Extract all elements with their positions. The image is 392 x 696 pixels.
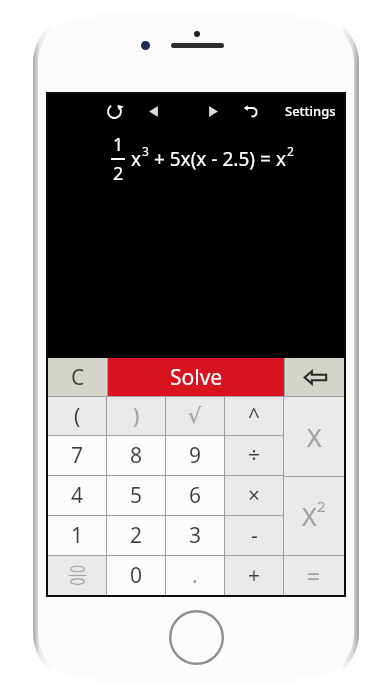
button[interactable]: 8 [107,436,165,475]
staticText: 0 [130,561,143,590]
staticText: + [248,561,261,590]
button[interactable]: Redo [100,97,128,125]
button[interactable]: √ [166,397,224,435]
staticText: 2 [317,496,326,516]
staticText: ÷ [248,441,261,470]
button[interactable]: 4 [48,476,106,515]
button[interactable]: Settings [277,96,344,126]
button[interactable]: Solve [108,358,284,396]
staticText: x [131,146,142,172]
staticText: 2 [130,521,143,550]
button[interactable]: ÷ [225,436,283,475]
button[interactable]: 3 [166,516,224,555]
staticText: 3 [142,143,149,159]
button[interactable]: = [284,556,344,595]
button[interactable]: ^ [225,397,283,435]
staticText: C [71,363,85,392]
staticText: 2 [287,143,294,159]
staticText: 5 [130,481,143,510]
staticText: = [307,560,321,591]
button[interactable]: Fraction [48,556,106,595]
staticText: 3 [189,521,202,550]
staticText: 9 [189,441,202,470]
button[interactable]: 5 [107,476,165,515]
staticText: × [248,481,261,510]
staticText: 4 [71,481,84,510]
button[interactable]: Cursor right [200,98,226,124]
button[interactable]: X [284,397,344,476]
staticText: 1 [71,521,84,550]
staticText: √ [188,404,202,428]
button[interactable]: - [225,516,283,555]
staticText: 8 [130,441,143,470]
staticText: . [192,561,198,590]
button[interactable]: . [166,556,224,595]
button[interactable]: 0 [107,556,165,595]
button[interactable]: 2 [107,516,165,555]
staticText: - [251,521,258,550]
button[interactable]: 7 [48,436,106,475]
staticText: X [307,420,322,454]
staticText: Solve [170,363,223,392]
staticText: ^ [248,402,261,431]
button[interactable]: Undo [236,97,264,125]
button[interactable]: C [48,358,107,396]
staticText: ) [133,402,140,431]
button[interactable]: 9 [166,436,224,475]
staticText: ( [74,402,81,431]
staticText: Settings [285,102,336,120]
button[interactable]: Backspace [285,358,344,396]
button[interactable]: ( [48,397,106,435]
staticText: x [276,146,287,172]
button[interactable]: ) [107,397,165,435]
staticText: 7 [71,441,84,470]
staticText: 6 [189,481,202,510]
staticText: X [302,499,317,533]
button[interactable]: Cursor left [140,98,166,124]
staticText: 1 [113,132,124,157]
button[interactable]: 1 [48,516,106,555]
staticText: 2 [113,161,124,186]
button[interactable]: + [225,556,283,595]
button[interactable]: × [225,476,283,515]
button[interactable]: 6 [166,476,224,515]
staticText: + 5x(x - 2.5) = [149,146,276,172]
button[interactable]: X [284,477,344,555]
